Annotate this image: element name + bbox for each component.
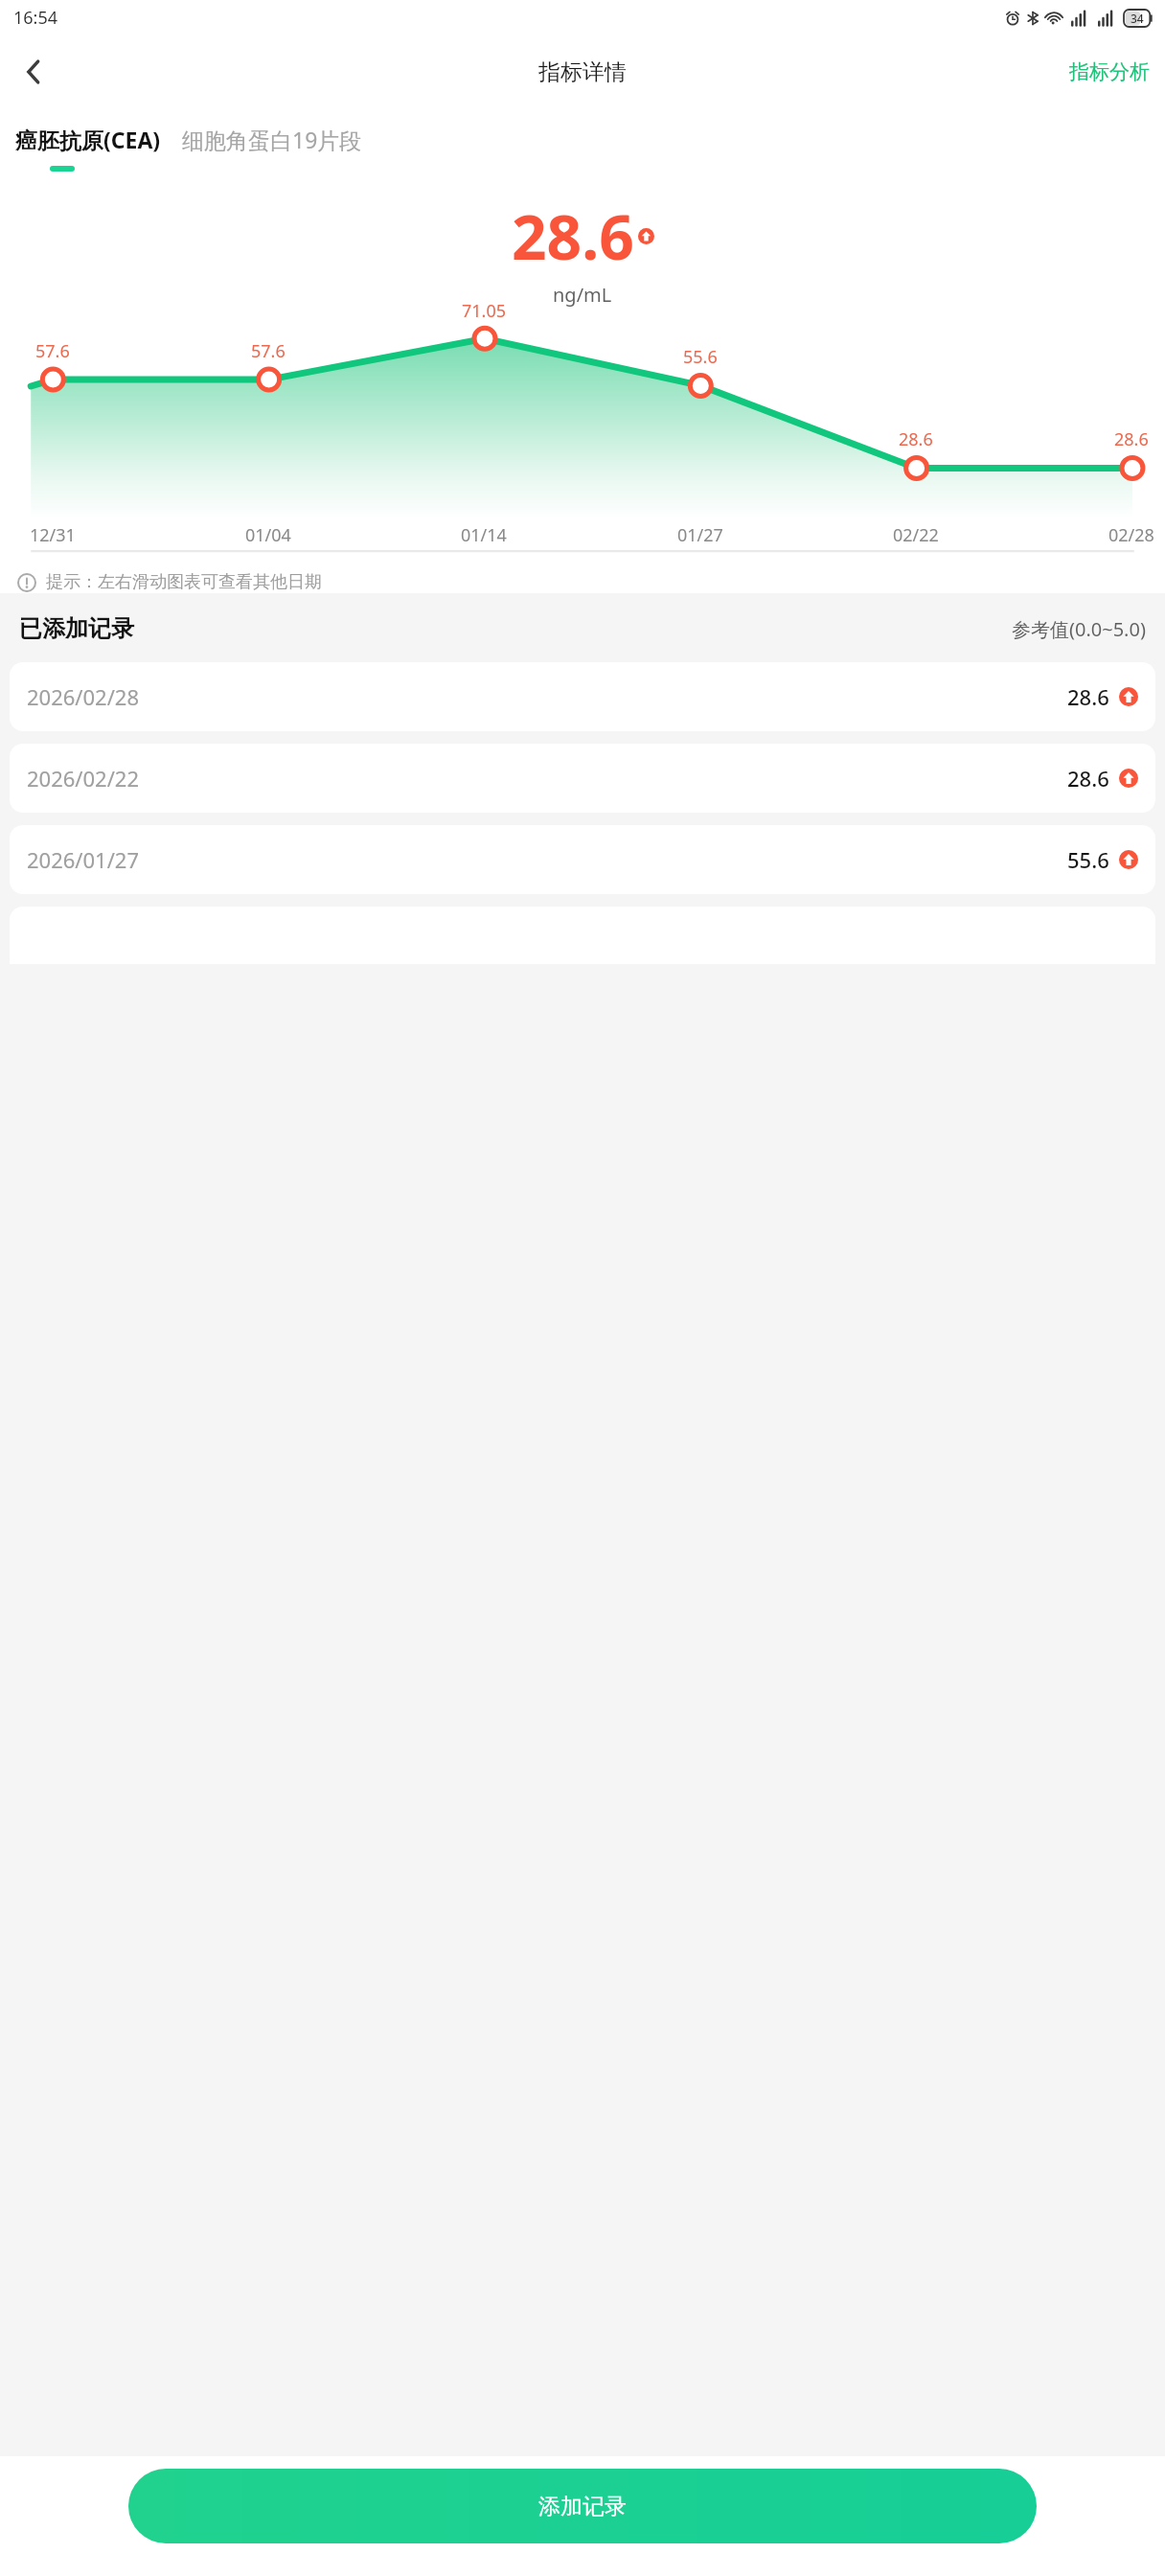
staticText: 01/04 — [245, 523, 291, 547]
button[interactable]: 2026/01/27 — [10, 825, 1155, 894]
staticText: 02/28 — [1108, 523, 1154, 547]
staticText: 55.6 — [1067, 845, 1109, 874]
staticText: 12/31 — [30, 523, 76, 547]
staticText: 癌胚抗原(CEA) — [15, 125, 161, 154]
button[interactable]: 细胞角蛋白19片段 — [180, 122, 364, 157]
button[interactable]: Back — [6, 44, 61, 100]
staticText: 28.6 — [899, 427, 933, 451]
staticText: 57.6 — [251, 339, 286, 363]
staticText: 已添加记录 — [19, 614, 134, 643]
staticText: 71.05 — [462, 299, 507, 323]
staticText: 指标分析 — [1069, 59, 1150, 84]
button[interactable]: 2026/02/28 — [10, 662, 1155, 731]
staticText: 28.6 — [1067, 764, 1109, 793]
staticText: 2026/02/28 — [27, 682, 140, 711]
staticText: 添加记录 — [538, 2493, 627, 2520]
staticText: 16:54 — [13, 6, 58, 30]
button[interactable]: 指标分析 — [1063, 50, 1155, 94]
staticText: ng/mL — [553, 282, 612, 308]
staticText: 参考值(0.0~5.0) — [1012, 616, 1146, 642]
staticText: 28.6 — [1067, 682, 1109, 711]
staticText: 55.6 — [683, 345, 718, 369]
button[interactable]: 添加记录 — [128, 2469, 1037, 2543]
staticText: 提示：左右滑动图表可查看其他日期 — [46, 571, 322, 593]
staticText: 57.6 — [35, 339, 70, 363]
staticText: 02/22 — [893, 523, 939, 547]
staticText: 2026/01/27 — [27, 845, 140, 874]
button[interactable]: 癌胚抗原(CEA) — [13, 122, 163, 157]
staticText: 28.6 — [1114, 427, 1149, 451]
staticText: 细胞角蛋白19片段 — [182, 125, 362, 154]
staticText: 34 — [1131, 11, 1144, 26]
staticText: 28.6 — [512, 195, 634, 278]
button[interactable]: 2026/02/22 — [10, 744, 1155, 813]
staticText: 01/27 — [677, 523, 723, 547]
staticText: 01/14 — [461, 523, 507, 547]
staticText: 指标详情 — [538, 58, 627, 86]
staticText: 2026/02/22 — [27, 764, 140, 793]
